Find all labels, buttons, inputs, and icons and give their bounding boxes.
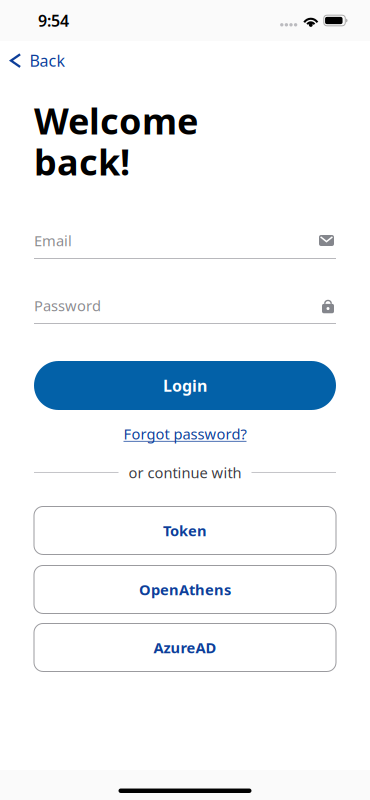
staticText: Password [34, 296, 101, 315]
button[interactable]: Back [0, 41, 76, 76]
staticText: or continue with [128, 463, 241, 482]
button[interactable]: Login [34, 361, 336, 410]
staticText: Email [34, 231, 72, 250]
staticText: Forgot password? [123, 424, 246, 443]
staticText: Back [30, 50, 66, 71]
button[interactable]: Token [34, 506, 336, 554]
staticText: Token [163, 521, 207, 540]
button[interactable]: Forgot password? [115, 419, 254, 448]
button[interactable]: OpenAthens [34, 565, 336, 613]
staticText: back! [34, 138, 130, 185]
button[interactable]: AzureAD [34, 623, 336, 671]
staticText: AzureAD [153, 638, 216, 657]
staticText: Welcome [34, 97, 198, 144]
staticText: Login [163, 375, 207, 396]
staticText: OpenAthens [139, 580, 231, 599]
staticText: 9:54 [38, 10, 69, 31]
